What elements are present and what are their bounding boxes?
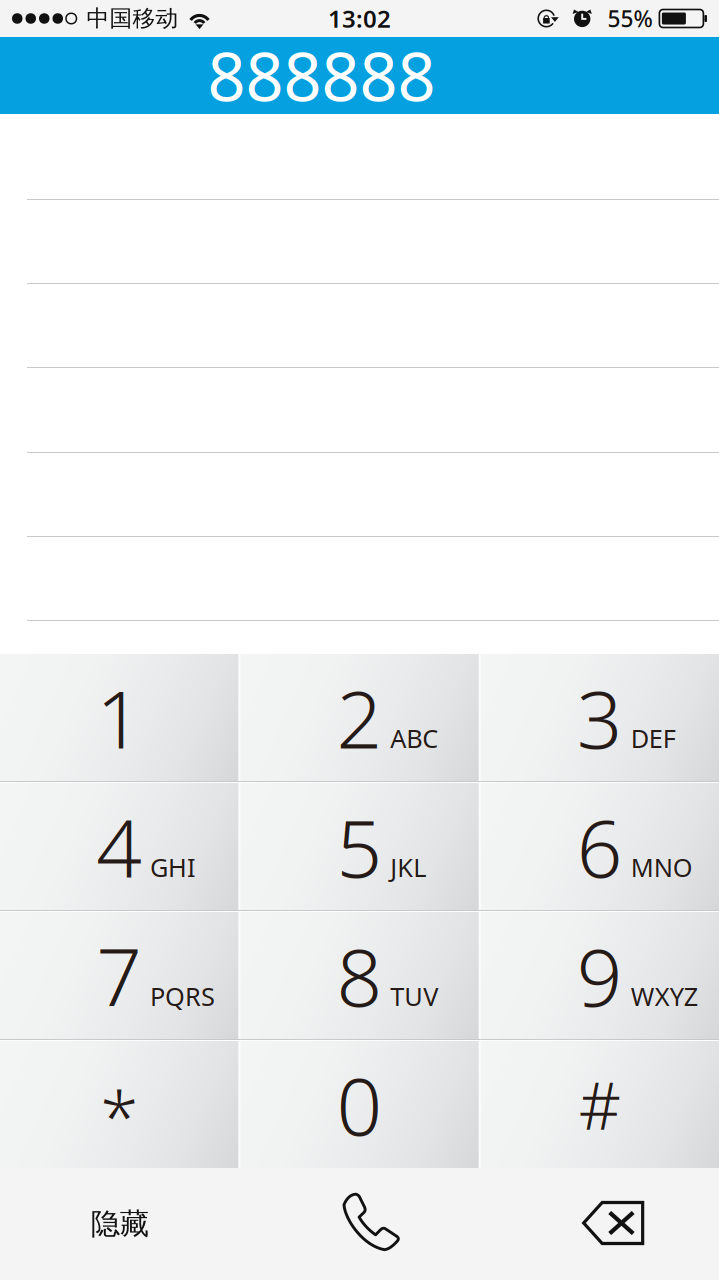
button[interactable]: 7 xyxy=(0,912,238,1039)
staticText: TUV xyxy=(390,979,438,1013)
staticText: GHI xyxy=(150,850,196,884)
staticText: 0 xyxy=(336,1051,382,1158)
staticText: 13:02 xyxy=(328,3,391,34)
button[interactable]: 4 xyxy=(0,783,238,910)
button[interactable]: # xyxy=(481,1041,719,1168)
button[interactable]: 5 xyxy=(240,783,479,910)
button[interactable]: 0 xyxy=(240,1041,479,1168)
button[interactable]: 2 xyxy=(240,654,479,781)
staticText: 55% xyxy=(607,3,652,33)
staticText: 8 xyxy=(336,922,382,1029)
button[interactable]: * xyxy=(0,1041,238,1168)
staticText: 6 xyxy=(577,793,623,900)
staticText: WXYZ xyxy=(631,979,698,1013)
button[interactable]: 8 xyxy=(240,912,479,1039)
staticText: PQRS xyxy=(150,979,215,1013)
button[interactable]: 9 xyxy=(481,912,719,1039)
staticText: 9 xyxy=(577,922,623,1029)
button[interactable]: 1 xyxy=(0,654,238,781)
staticText: MNO xyxy=(631,850,693,884)
staticText: 5 xyxy=(336,793,382,900)
staticText: 888888 xyxy=(207,31,435,120)
staticText: 中国移动 xyxy=(86,5,178,32)
button[interactable]: 隐藏 xyxy=(0,1168,240,1280)
staticText: 2 xyxy=(336,664,382,771)
staticText: ABC xyxy=(390,721,438,755)
staticText: DEF xyxy=(631,721,676,755)
staticText: 7 xyxy=(96,922,142,1029)
button[interactable]: Delete xyxy=(479,1168,719,1280)
staticText: * xyxy=(100,1069,138,1162)
button[interactable]: Call xyxy=(240,1168,479,1280)
button[interactable]: 6 xyxy=(481,783,719,910)
staticText: 1 xyxy=(96,664,142,771)
staticText: # xyxy=(579,1061,621,1148)
staticText: 隐藏 xyxy=(91,1206,149,1242)
staticText: 3 xyxy=(577,664,623,771)
button[interactable]: 3 xyxy=(481,654,719,781)
staticText: 4 xyxy=(96,793,142,900)
staticText: JKL xyxy=(390,850,426,884)
